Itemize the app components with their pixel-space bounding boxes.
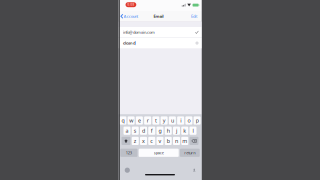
button[interactable]: Shift [121, 137, 130, 145]
staticText: 123 [126, 150, 132, 155]
button[interactable]: u [169, 116, 176, 125]
staticText: space [154, 150, 164, 155]
staticText: Email [153, 14, 163, 19]
staticText: return [184, 150, 195, 155]
button[interactable]: Dictate [193, 171, 201, 174]
button[interactable]: y [161, 116, 168, 125]
button[interactable]: l [189, 127, 196, 135]
button[interactable]: t [152, 116, 159, 125]
button[interactable]: r [144, 116, 151, 125]
staticText: n [175, 137, 178, 144]
button[interactable]: s [132, 127, 139, 135]
staticText: u [171, 117, 174, 124]
button[interactable]: n [173, 137, 180, 145]
staticText: r [147, 117, 149, 124]
staticText: Edit [191, 14, 197, 19]
button[interactable]: p [194, 116, 201, 125]
staticText: info@domain.com [123, 30, 155, 35]
button[interactable]: eleand [118, 38, 201, 48]
staticText: m [182, 137, 187, 144]
staticText: w [129, 117, 133, 124]
button[interactable]: j [173, 127, 180, 135]
staticText: b [167, 137, 170, 144]
staticText: c [150, 137, 153, 144]
button[interactable]: o [185, 116, 192, 125]
staticText: q [121, 117, 124, 124]
staticText: e [138, 117, 141, 124]
button[interactable]: c [148, 137, 155, 145]
button[interactable]: return [180, 149, 200, 157]
button[interactable]: h [165, 127, 172, 135]
staticText: k [183, 127, 186, 134]
button[interactable]: f [148, 127, 155, 135]
button[interactable]: d [140, 127, 147, 135]
staticText: d [142, 127, 145, 134]
staticText: Account [124, 14, 138, 19]
button[interactable]: q [119, 116, 126, 125]
button[interactable]: m [181, 137, 188, 145]
staticText: x [142, 137, 145, 144]
button[interactable]: x [140, 137, 147, 145]
button[interactable]: v [156, 137, 163, 145]
button[interactable]: Delete [189, 137, 198, 145]
staticText: t [155, 117, 157, 124]
button[interactable]: k [181, 127, 188, 135]
button[interactable]: b [165, 137, 172, 145]
button[interactable]: e [136, 116, 143, 125]
button[interactable]: info@domain.com [118, 27, 201, 37]
staticText: s [134, 127, 137, 134]
button[interactable]: Account [118, 11, 138, 21]
staticText: o [187, 117, 190, 124]
staticText: g [158, 127, 161, 134]
button[interactable]: a [123, 127, 130, 135]
staticText: a [125, 127, 128, 134]
button[interactable]: 123 [120, 149, 137, 157]
staticText: l [192, 127, 193, 134]
button[interactable]: w [128, 116, 135, 125]
button[interactable]: space [139, 149, 179, 157]
staticText: z [134, 137, 137, 144]
button[interactable]: i [177, 116, 184, 125]
button[interactable]: Emoji keyboard [118, 170, 130, 175]
staticText: i [180, 117, 181, 124]
staticText: p [196, 117, 199, 124]
staticText: f [151, 127, 153, 134]
button[interactable]: Edit [191, 11, 201, 21]
button[interactable]: z [132, 137, 139, 145]
staticText: h [167, 127, 170, 134]
staticText: y [163, 117, 166, 124]
staticText: 0:08 [127, 3, 134, 6]
staticText: v [158, 137, 161, 144]
staticText: eleand [123, 40, 135, 46]
button[interactable]: g [156, 127, 163, 135]
staticText: j [176, 127, 177, 134]
